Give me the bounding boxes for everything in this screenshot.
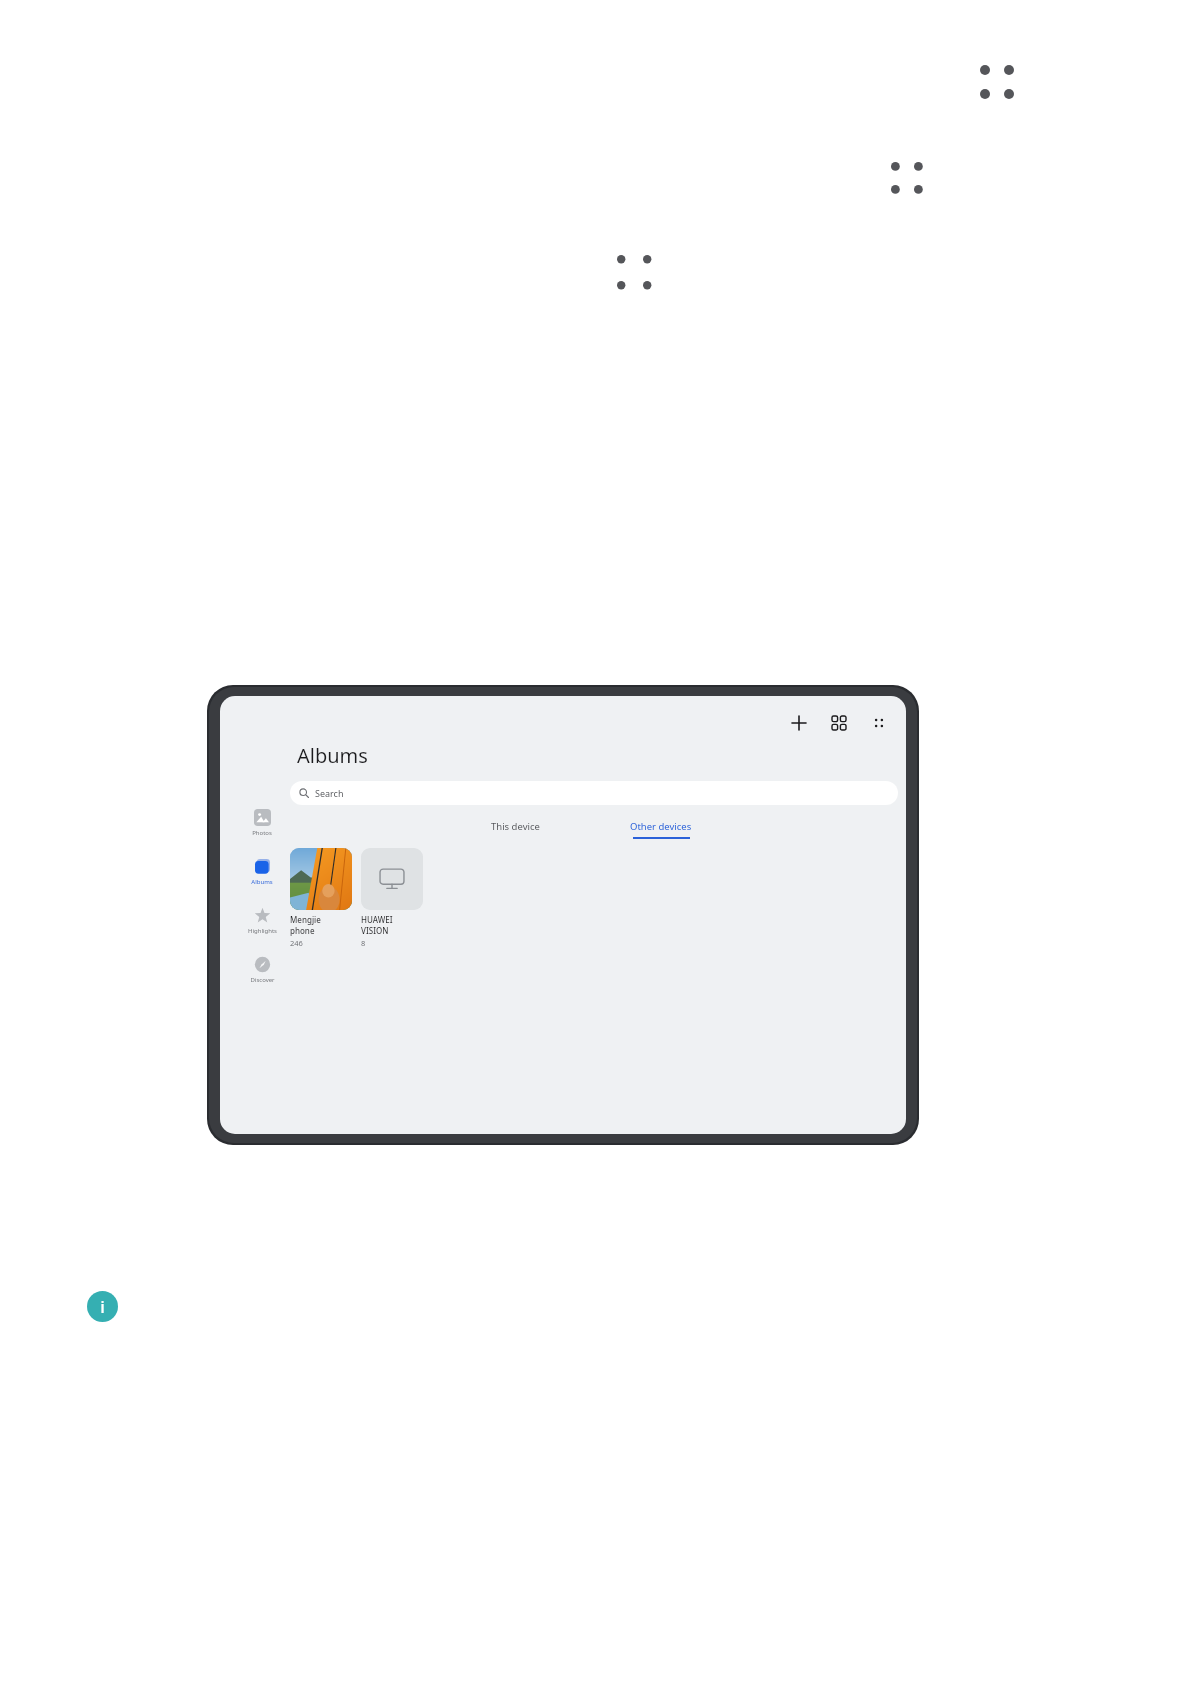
button[interactable]: Information <box>87 1291 118 1322</box>
staticText: Mengjie <box>290 914 321 925</box>
button[interactable]: Albums <box>238 857 286 887</box>
staticText: i <box>100 1295 105 1318</box>
staticText: phone <box>290 925 315 936</box>
staticText: Highlights <box>248 927 277 935</box>
staticText: Albums <box>297 742 368 769</box>
button[interactable]: HUAWEI <box>361 848 423 948</box>
staticText: 246 <box>290 938 303 948</box>
button[interactable]: Other devices <box>624 818 698 839</box>
staticText: This device <box>491 820 540 833</box>
button[interactable]: Mengjie <box>290 848 352 948</box>
staticText: Photos <box>252 829 272 837</box>
staticText: Albums <box>251 878 273 886</box>
button[interactable]: Add <box>786 710 812 736</box>
staticText: Search <box>315 787 344 799</box>
staticText: 8 <box>361 938 366 948</box>
button[interactable]: Photos <box>238 808 286 838</box>
button[interactable]: Highlights <box>238 906 286 936</box>
staticText: HUAWEI <box>361 914 393 925</box>
staticText: Discover <box>250 976 275 984</box>
staticText: VISION <box>361 925 389 936</box>
button[interactable]: Grid view <box>826 710 852 736</box>
button[interactable]: This device <box>485 818 546 835</box>
staticText: Other devices <box>630 820 692 833</box>
button[interactable]: More options <box>866 710 892 736</box>
button[interactable]: Search <box>290 781 898 805</box>
button[interactable]: Discover <box>238 955 286 985</box>
